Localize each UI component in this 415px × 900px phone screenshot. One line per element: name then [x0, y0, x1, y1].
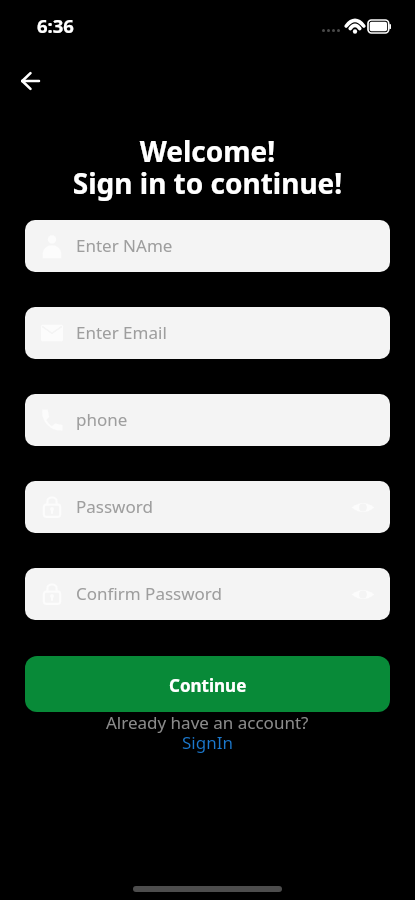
button[interactable]: Enter NAme	[25, 220, 390, 272]
button[interactable]: Enter Email	[25, 307, 390, 359]
staticText: phone	[76, 408, 128, 431]
button[interactable]: Back	[10, 60, 51, 101]
button[interactable]: SignIn	[182, 731, 233, 754]
button[interactable]: Continue	[25, 656, 390, 712]
staticText: 6:36	[37, 13, 74, 38]
staticText: Already have an account?	[106, 711, 309, 734]
staticText: Welcome! Sign in to continue!	[0, 132, 415, 202]
staticText: Password	[76, 495, 153, 518]
staticText: SignIn	[182, 731, 233, 754]
staticText: Enter Email	[76, 321, 167, 344]
button[interactable]: phone	[25, 394, 390, 446]
button[interactable]: Confirm Password	[25, 568, 390, 620]
staticText: Confirm Password	[76, 582, 222, 605]
button[interactable]: Password	[25, 481, 390, 533]
staticText: Continue	[169, 674, 247, 697]
staticText: Enter NAme	[76, 234, 173, 257]
